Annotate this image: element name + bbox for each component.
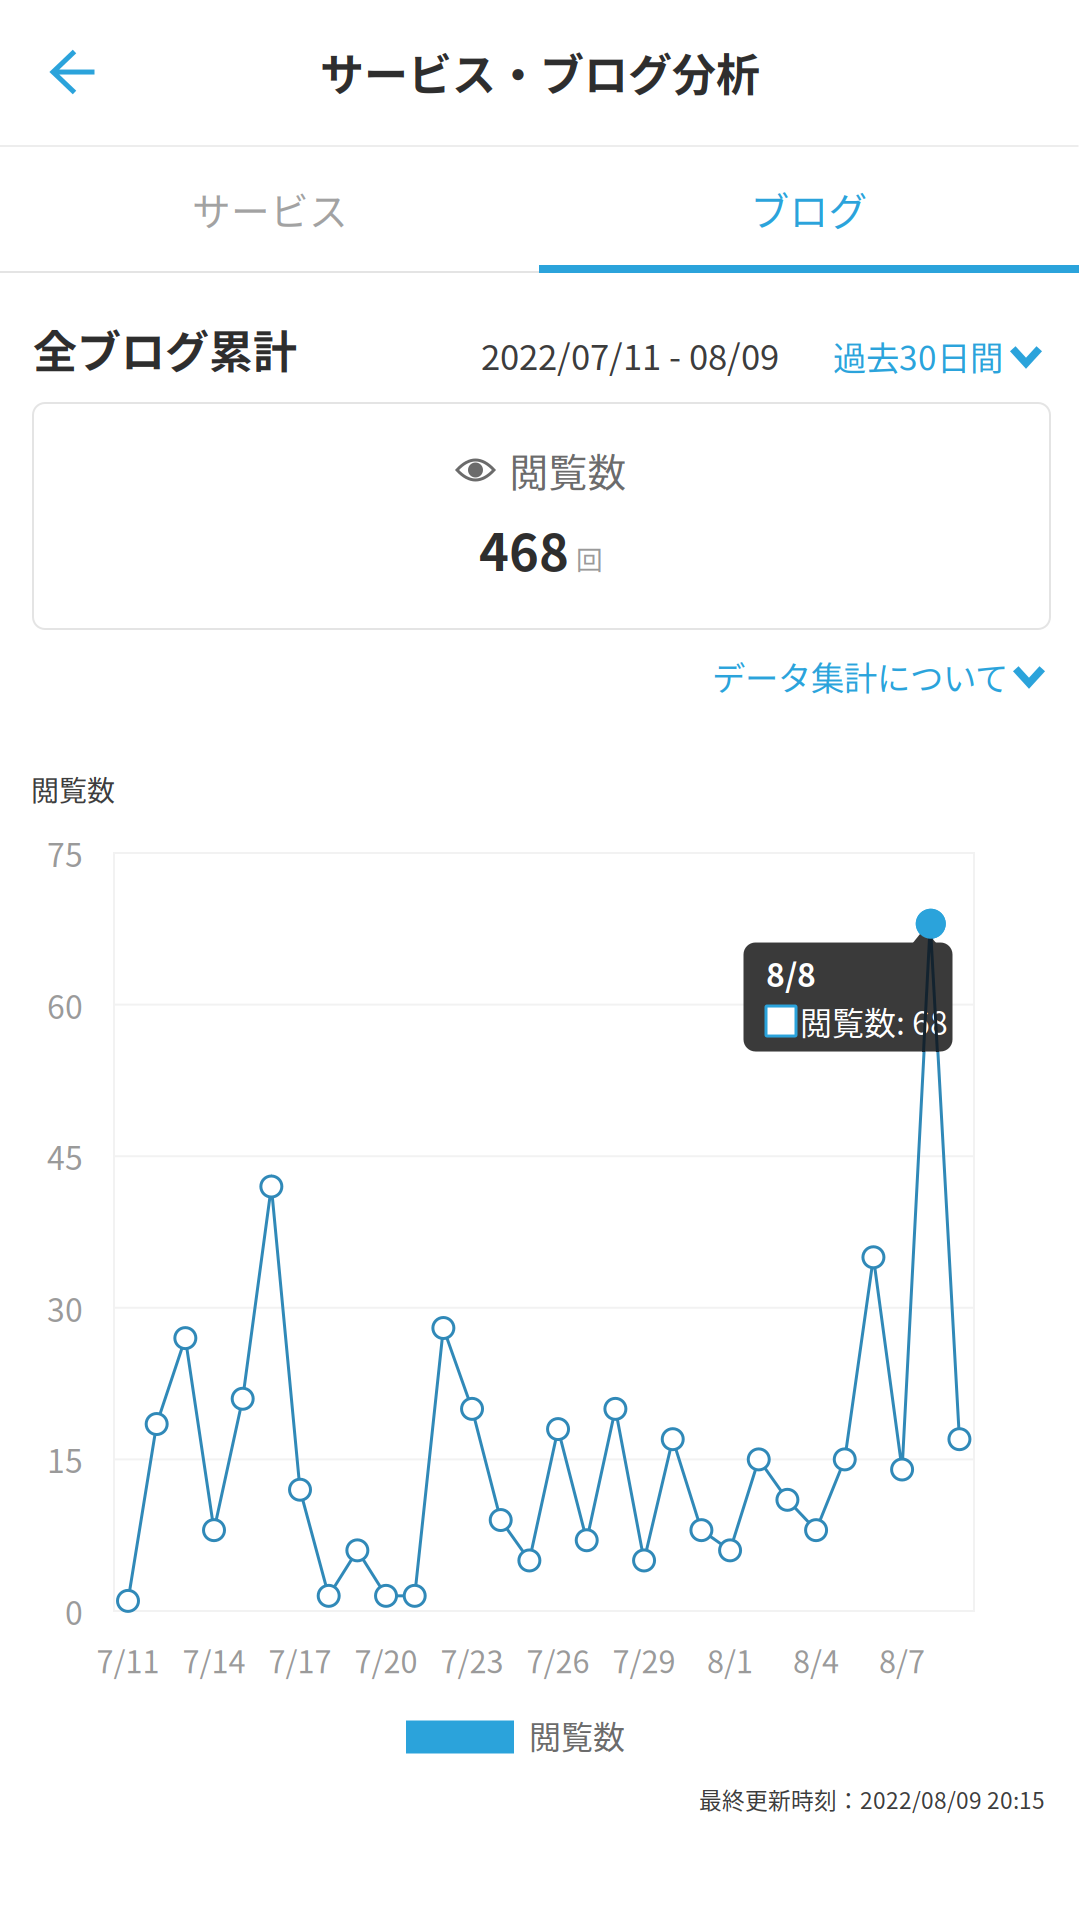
staticText: 7/23 xyxy=(440,1638,503,1682)
button[interactable]: 過去30日間 xyxy=(783,332,1043,380)
staticText: 回 xyxy=(576,539,603,577)
staticText: 468 xyxy=(479,512,569,586)
staticText: データ集計について xyxy=(712,652,1008,700)
staticText: 60 xyxy=(47,982,83,1028)
staticText: ブログ xyxy=(750,181,867,237)
staticText: 7/11 xyxy=(96,1638,159,1682)
staticText: 最終更新時刻：2022/08/09 20:15 xyxy=(699,1783,1045,1815)
staticText: 45 xyxy=(47,1133,83,1179)
staticText: 8/4 xyxy=(793,1638,839,1682)
staticText: 7/29 xyxy=(613,1638,676,1682)
staticText: 7/20 xyxy=(354,1638,417,1682)
staticText: 閲覧数 xyxy=(529,1712,625,1758)
staticText: 全ブログ累計 xyxy=(33,317,297,381)
staticText: 閲覧数 xyxy=(509,442,626,498)
staticText: サービス xyxy=(192,181,348,237)
staticText: サービス・ブログ分析 xyxy=(320,40,760,104)
staticText: 過去30日間 xyxy=(833,332,1003,380)
staticText: 8/7 xyxy=(879,1638,925,1682)
button[interactable]: ブログ xyxy=(539,146,1079,272)
staticText: 7/17 xyxy=(268,1638,331,1682)
staticText: 30 xyxy=(47,1285,83,1331)
staticText: 75 xyxy=(47,830,83,876)
button[interactable]: サービス xyxy=(0,146,539,272)
staticText: 2022/07/11 - 08/09 xyxy=(481,330,779,380)
staticText: 7/14 xyxy=(182,1638,245,1682)
staticText: 8/8 xyxy=(766,950,816,996)
button[interactable]: 戻る xyxy=(13,12,133,132)
staticText: 7/26 xyxy=(526,1638,589,1682)
staticText: 15 xyxy=(47,1436,83,1482)
staticText: 8/1 xyxy=(707,1638,753,1682)
button[interactable]: データ集計について xyxy=(646,652,1046,700)
staticText: 閲覧数: 68 xyxy=(800,998,948,1044)
staticText: 閲覧数 xyxy=(31,769,115,809)
staticText: 0 xyxy=(65,1588,83,1634)
